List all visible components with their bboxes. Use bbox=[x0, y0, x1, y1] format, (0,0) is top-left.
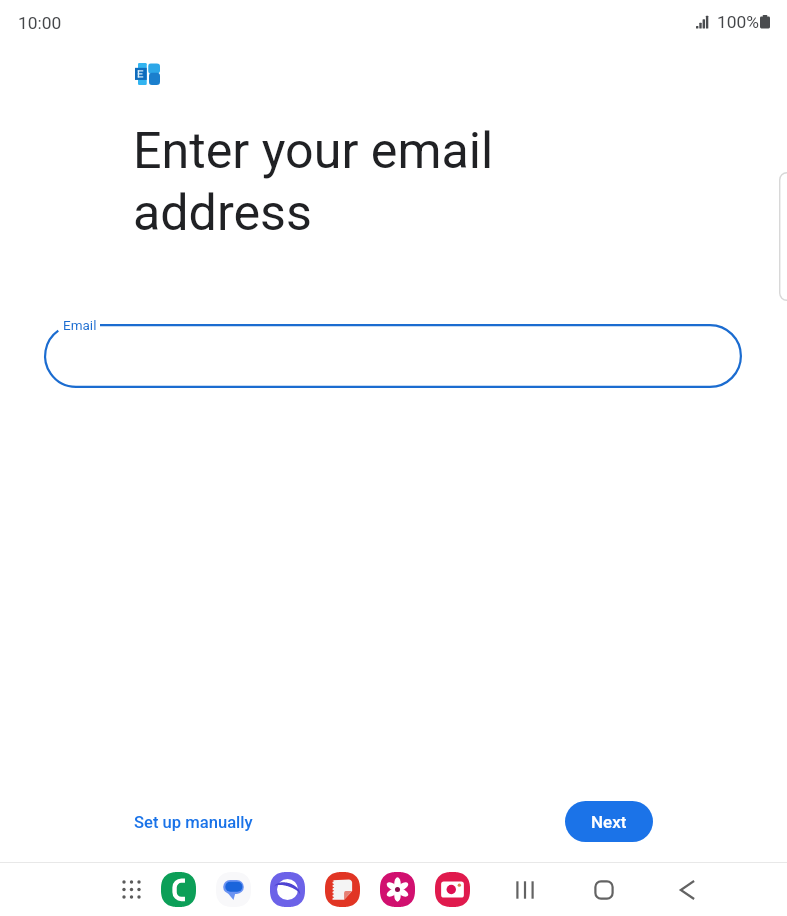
staticText: Email bbox=[63, 317, 97, 333]
staticText: 10:00 bbox=[18, 13, 62, 33]
button[interactable]: Recents bbox=[501, 866, 549, 914]
staticText: Enter your email address bbox=[133, 121, 494, 242]
button[interactable]: Email address input bbox=[44, 324, 742, 388]
button[interactable]: Internet bbox=[268, 870, 306, 908]
button[interactable]: Gallery bbox=[378, 870, 416, 908]
button[interactable]: Home bbox=[580, 866, 628, 914]
button[interactable]: Back bbox=[663, 866, 711, 914]
button[interactable]: Messages bbox=[214, 870, 252, 908]
button[interactable]: Camera bbox=[433, 870, 471, 908]
staticText: 100% bbox=[717, 12, 760, 32]
button[interactable]: Next bbox=[565, 801, 653, 842]
staticText: Next bbox=[591, 812, 627, 832]
button[interactable]: Notes bbox=[323, 870, 361, 908]
button[interactable]: Phone bbox=[159, 870, 197, 908]
button[interactable]: Set up manually bbox=[121, 801, 266, 844]
button[interactable]: Apps bbox=[111, 869, 151, 909]
staticText: Set up manually bbox=[134, 813, 253, 832]
